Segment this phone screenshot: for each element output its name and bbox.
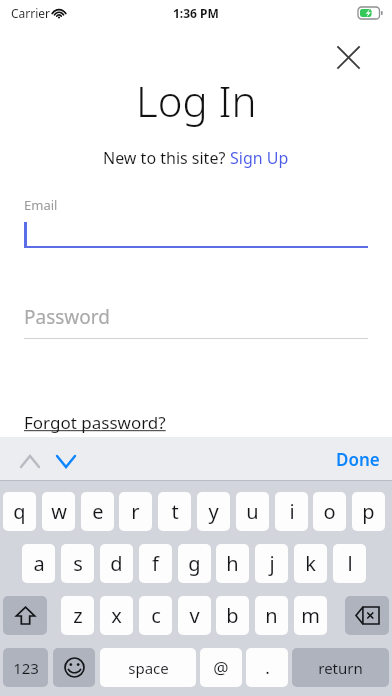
button[interactable]: n bbox=[255, 596, 288, 635]
staticText: y bbox=[208, 498, 219, 525]
staticText: Done bbox=[336, 448, 380, 471]
button[interactable]: p bbox=[352, 492, 385, 531]
button[interactable]: i bbox=[275, 492, 308, 531]
staticText: n bbox=[265, 602, 278, 629]
button[interactable]: d bbox=[100, 544, 133, 583]
button[interactable]: Backspace bbox=[345, 596, 389, 635]
button[interactable]: c bbox=[139, 596, 172, 635]
staticText: t bbox=[171, 498, 179, 525]
button[interactable]: space bbox=[100, 648, 196, 687]
staticText: w bbox=[51, 498, 67, 525]
button[interactable]: q bbox=[3, 492, 36, 531]
staticText: New to this site? bbox=[103, 147, 230, 169]
button[interactable]: j bbox=[255, 544, 288, 583]
button[interactable]: x bbox=[100, 596, 133, 635]
staticText: Forgot password? bbox=[24, 411, 166, 434]
staticText: space bbox=[128, 658, 169, 678]
button[interactable]: Sign Up bbox=[230, 147, 289, 169]
button[interactable]: t bbox=[158, 492, 191, 531]
button[interactable]: @ bbox=[200, 648, 242, 687]
button[interactable]: l bbox=[333, 544, 366, 583]
button[interactable]: u bbox=[236, 492, 269, 531]
staticText: i bbox=[289, 498, 295, 525]
staticText: j bbox=[269, 550, 275, 577]
button[interactable]: h bbox=[216, 544, 249, 583]
staticText: . bbox=[265, 656, 270, 679]
staticText: a bbox=[33, 550, 45, 577]
staticText: g bbox=[188, 550, 201, 577]
button[interactable]: . bbox=[246, 648, 288, 687]
staticText: z bbox=[73, 602, 83, 629]
button[interactable]: a bbox=[22, 544, 55, 583]
button[interactable]: Email bbox=[24, 196, 368, 248]
staticText: return bbox=[318, 658, 363, 678]
button[interactable]: z bbox=[61, 596, 94, 635]
button[interactable]: b bbox=[216, 596, 249, 635]
button[interactable]: Shift bbox=[3, 596, 47, 635]
staticText: f bbox=[152, 550, 159, 577]
button[interactable]: Next field bbox=[50, 445, 82, 477]
staticText: Password bbox=[24, 304, 110, 330]
button[interactable]: e bbox=[81, 492, 114, 531]
staticText: e bbox=[92, 498, 104, 525]
staticText: Carrier bbox=[11, 5, 51, 21]
staticText: b bbox=[226, 602, 239, 629]
staticText: p bbox=[362, 498, 375, 525]
staticText: 1:36 PM bbox=[173, 5, 219, 21]
button[interactable]: v bbox=[178, 596, 211, 635]
staticText: Log In bbox=[136, 72, 257, 129]
button[interactable]: y bbox=[197, 492, 230, 531]
staticText: v bbox=[189, 602, 200, 629]
staticText: u bbox=[246, 498, 259, 525]
button[interactable]: Previous field bbox=[14, 445, 46, 477]
button[interactable]: m bbox=[294, 596, 327, 635]
button[interactable]: k bbox=[294, 544, 327, 583]
button[interactable]: Emoji bbox=[53, 648, 95, 687]
button[interactable]: return bbox=[292, 648, 389, 687]
staticText: o bbox=[323, 498, 336, 525]
staticText: m bbox=[301, 602, 320, 629]
staticText: l bbox=[347, 550, 353, 577]
staticText: r bbox=[131, 498, 140, 525]
staticText: s bbox=[73, 550, 83, 577]
staticText: h bbox=[226, 550, 239, 577]
button[interactable]: Close bbox=[330, 39, 366, 75]
button[interactable]: Password bbox=[24, 304, 368, 339]
staticText: 123 bbox=[13, 658, 39, 678]
button[interactable]: Forgot password? bbox=[24, 411, 166, 434]
button[interactable]: s bbox=[61, 544, 94, 583]
button[interactable]: f bbox=[139, 544, 172, 583]
staticText: x bbox=[111, 602, 122, 629]
button[interactable]: g bbox=[178, 544, 211, 583]
button[interactable]: Done bbox=[336, 448, 380, 471]
staticText: Sign Up bbox=[230, 147, 289, 169]
button[interactable]: r bbox=[119, 492, 152, 531]
staticText: k bbox=[305, 550, 316, 577]
staticText: d bbox=[110, 550, 123, 577]
staticText: q bbox=[13, 498, 26, 525]
button[interactable]: w bbox=[42, 492, 75, 531]
staticText: Email bbox=[24, 196, 58, 214]
button[interactable]: o bbox=[313, 492, 346, 531]
button[interactable]: 123 bbox=[3, 648, 48, 687]
staticText: @ bbox=[213, 656, 229, 679]
staticText: c bbox=[151, 602, 161, 629]
